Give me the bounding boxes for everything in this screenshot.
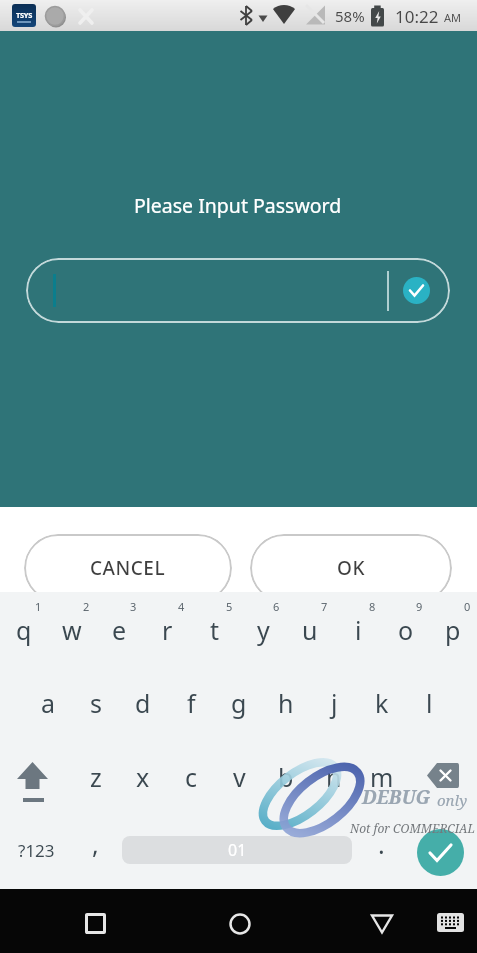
staticText: s — [90, 686, 102, 720]
staticText: p — [445, 613, 461, 647]
button[interactable]: a — [24, 675, 72, 731]
staticText: ?123 — [18, 839, 55, 862]
button[interactable] — [219, 903, 260, 944]
button[interactable]: ?123 — [6, 825, 66, 875]
staticText: 5 — [226, 599, 233, 614]
staticText: c — [185, 760, 198, 794]
staticText: j — [331, 686, 338, 720]
button[interactable] — [430, 905, 470, 939]
staticText: 01 — [228, 839, 247, 861]
staticText: d — [135, 686, 151, 720]
button[interactable]: , — [75, 819, 115, 869]
button[interactable] — [75, 903, 116, 944]
staticText: m — [370, 760, 394, 794]
button[interactable]: k — [358, 675, 406, 731]
staticText: z — [90, 760, 102, 794]
button[interactable]: m — [358, 749, 406, 805]
staticText: only — [437, 790, 468, 810]
button[interactable] — [361, 903, 402, 944]
staticText: 9 — [416, 599, 423, 614]
button[interactable]: CANCEL — [24, 534, 232, 602]
button[interactable]: t — [191, 604, 239, 656]
staticText: 1 — [35, 599, 42, 614]
button[interactable]: x — [119, 749, 167, 805]
button[interactable]: OK — [250, 534, 452, 602]
button[interactable]: c — [167, 749, 215, 805]
staticText: 4 — [178, 599, 185, 614]
staticText: 7 — [321, 599, 328, 614]
staticText: g — [231, 686, 247, 720]
staticText: CANCEL — [90, 555, 166, 581]
button[interactable] — [403, 277, 430, 304]
staticText: 58% — [335, 6, 365, 26]
button[interactable]: . — [361, 819, 401, 869]
button[interactable]: y — [239, 604, 287, 656]
staticText: q — [16, 613, 32, 647]
staticText: n — [326, 760, 342, 794]
button[interactable]: d — [119, 675, 167, 731]
button[interactable]: i — [334, 604, 382, 656]
button[interactable]: h — [262, 675, 310, 731]
staticText: , — [92, 827, 99, 861]
button[interactable]: z — [72, 749, 120, 805]
staticText: OK — [337, 555, 365, 581]
button[interactable]: p — [429, 604, 477, 656]
staticText: 10:22 — [395, 5, 439, 28]
button[interactable]: w — [48, 604, 96, 656]
staticText: x — [136, 760, 150, 794]
staticText: u — [302, 613, 318, 647]
button[interactable]: q — [0, 604, 48, 656]
staticText: b — [278, 760, 294, 794]
staticText: e — [112, 613, 127, 647]
button[interactable]: 01 — [122, 836, 352, 864]
staticText: . — [378, 827, 385, 861]
staticText: DEBUG — [362, 784, 431, 810]
staticText: a — [41, 686, 56, 720]
staticText: o — [398, 613, 414, 647]
button[interactable] — [420, 757, 468, 797]
button[interactable]: g — [215, 675, 263, 731]
button[interactable]: j — [310, 675, 358, 731]
button[interactable]: b — [262, 749, 310, 805]
staticText: Not for COMMERCIAL — [350, 820, 476, 836]
staticText: 3 — [130, 599, 137, 614]
staticText: i — [355, 613, 362, 647]
staticText: 8 — [369, 599, 376, 614]
button[interactable]: r — [143, 604, 191, 656]
button[interactable]: l — [405, 675, 453, 731]
staticText: f — [187, 686, 196, 720]
staticText: AM — [444, 10, 462, 25]
button[interactable] — [8, 755, 58, 807]
button[interactable]: o — [382, 604, 430, 656]
button[interactable]: v — [215, 749, 263, 805]
button[interactable]: n — [310, 749, 358, 805]
button[interactable]: s — [72, 675, 120, 731]
button[interactable] — [26, 258, 450, 323]
staticText: y — [257, 613, 270, 647]
staticText: r — [162, 613, 173, 647]
button[interactable] — [417, 829, 464, 876]
button[interactable]: e — [95, 604, 143, 656]
staticText: TSYS — [16, 10, 33, 20]
staticText: 6 — [273, 599, 280, 614]
staticText: 0 — [464, 599, 471, 614]
staticText: k — [375, 686, 389, 720]
button[interactable]: u — [286, 604, 334, 656]
staticText: t — [210, 613, 220, 647]
staticText: Please Input Password — [134, 192, 342, 219]
button[interactable]: f — [167, 675, 215, 731]
staticText: v — [233, 760, 246, 794]
staticText: 2 — [83, 599, 90, 614]
staticText: h — [278, 686, 294, 720]
staticText: l — [426, 686, 433, 720]
staticText: w — [62, 613, 82, 647]
